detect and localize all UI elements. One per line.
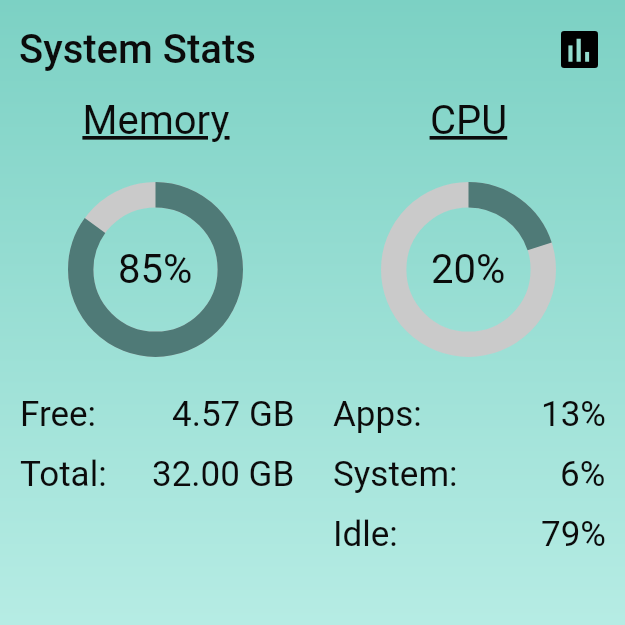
button[interactable]: Free:	[20, 394, 295, 435]
staticText: 79%	[541, 514, 606, 555]
staticText: 6%	[560, 454, 606, 495]
staticText: 85%	[118, 246, 193, 293]
button[interactable]: Idle:	[333, 514, 606, 555]
staticText: 32.00 GB	[152, 454, 295, 495]
staticText: 4.57 GB	[172, 394, 295, 435]
button[interactable]: Total:	[20, 454, 295, 495]
button[interactable]: System:	[333, 454, 606, 495]
button[interactable]: Chart details	[561, 31, 598, 68]
staticText: 13%	[541, 394, 606, 435]
staticText: System:	[333, 454, 458, 495]
staticText: 20%	[431, 246, 506, 293]
button[interactable]: CPU	[312, 97, 625, 144]
staticText: Apps:	[333, 394, 422, 435]
staticText: Idle:	[333, 514, 398, 555]
staticText: Total:	[20, 454, 107, 495]
button[interactable]: 20%	[381, 182, 556, 357]
button[interactable]: Apps:	[333, 394, 606, 435]
button[interactable]: 85%	[68, 182, 243, 357]
staticText: Free:	[20, 394, 97, 435]
staticText: Memory	[0, 97, 312, 144]
button[interactable]: Memory	[0, 97, 312, 144]
staticText: CPU	[312, 97, 625, 144]
button[interactable]: System Stats	[19, 26, 256, 73]
